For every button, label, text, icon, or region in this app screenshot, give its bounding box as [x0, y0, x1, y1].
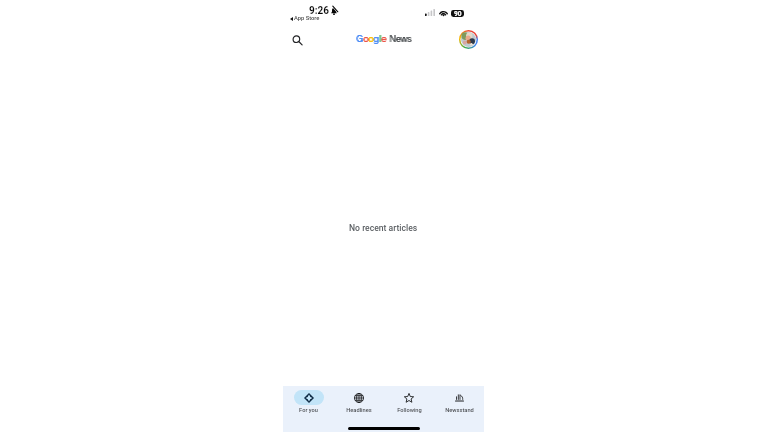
staticText: 90: [454, 10, 462, 17]
staticText: o: [368, 35, 373, 44]
staticText: No recent articles: [349, 223, 418, 233]
staticText: Following: [397, 407, 422, 414]
staticText: G: [357, 35, 364, 44]
button[interactable]: Account: [459, 30, 478, 49]
staticText: g: [374, 35, 380, 44]
staticText: Newsstand: [445, 407, 474, 414]
staticText: l: [379, 35, 381, 44]
button[interactable]: Following: [384, 386, 434, 432]
staticText: l: [380, 35, 382, 44]
staticText: For you: [299, 407, 318, 414]
staticText: g: [373, 35, 379, 44]
button[interactable]: For you: [283, 386, 334, 432]
staticText: Headlines: [346, 407, 372, 414]
staticText: e: [381, 35, 386, 44]
button[interactable]: Headlines: [334, 386, 384, 432]
staticText: App Store: [294, 15, 320, 22]
staticText: News: [390, 35, 412, 44]
button[interactable]: Search: [288, 31, 307, 50]
staticText: o: [364, 35, 369, 44]
staticText: G: [356, 35, 363, 44]
staticText: o: [363, 35, 368, 44]
staticText: News: [389, 35, 411, 44]
staticText: o: [369, 35, 374, 44]
staticText: 9:26: [309, 5, 330, 17]
staticText: e: [382, 35, 387, 44]
button[interactable]: Newsstand: [434, 386, 484, 432]
